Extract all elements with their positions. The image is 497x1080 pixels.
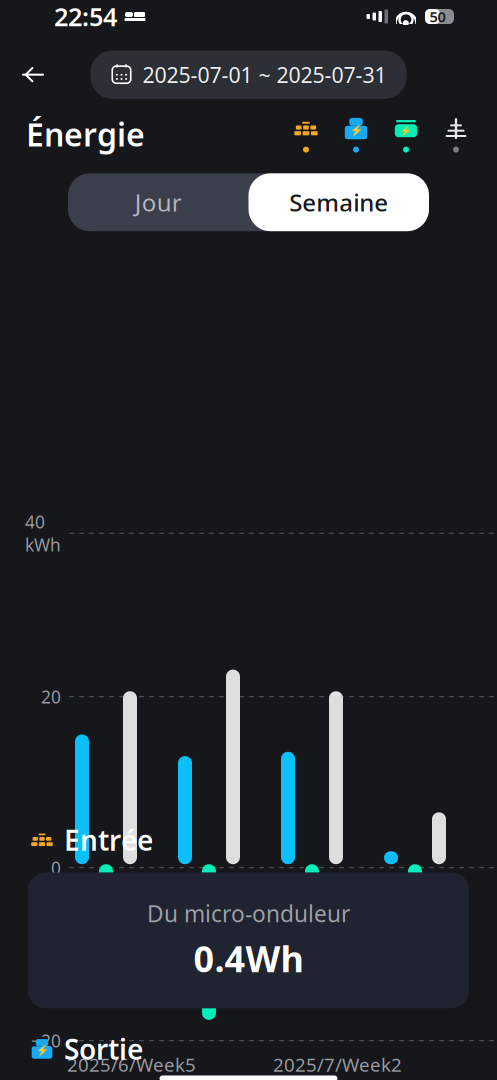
staticText: ● [402, 18, 409, 27]
staticText: ⚡ [35, 1045, 48, 1057]
staticText: 2025/7/Week2 [273, 1052, 402, 1077]
button[interactable]: Grid [443, 116, 469, 153]
staticText: Semaine [289, 186, 388, 218]
button[interactable]: Back [10, 53, 56, 97]
staticText: 40 kWh [25, 510, 61, 556]
staticText: Jour [135, 186, 182, 218]
button[interactable]: Battery [393, 116, 419, 153]
button[interactable]: 2025-07-01 ~ 2025-07-31 [90, 50, 406, 99]
button[interactable]: Semaine [248, 173, 429, 231]
staticText: 22:54 [54, 0, 117, 33]
staticText: 0.4Wh [193, 934, 303, 982]
button[interactable]: Du micro-onduleur [28, 872, 469, 1008]
staticText: −20 [31, 1029, 61, 1052]
button[interactable]: Jour [68, 173, 248, 231]
staticText: 2025/6/Week5 [67, 1052, 196, 1077]
staticText: 50 [429, 7, 445, 26]
staticText: ⚡ [349, 125, 362, 137]
staticText: Sortie [64, 1030, 143, 1067]
staticText: 2025-07-01 ~ 2025-07-31 [142, 60, 386, 89]
staticText: Entrée [64, 821, 153, 858]
button[interactable]: Solar [293, 116, 319, 153]
staticText: 0 [51, 856, 61, 879]
staticText: ⚡ [400, 125, 412, 136]
staticText: Du micro-onduleur [147, 898, 350, 928]
staticText: 20 [41, 685, 61, 708]
staticText: Énergie [26, 113, 145, 155]
button[interactable]: Home [343, 116, 369, 153]
